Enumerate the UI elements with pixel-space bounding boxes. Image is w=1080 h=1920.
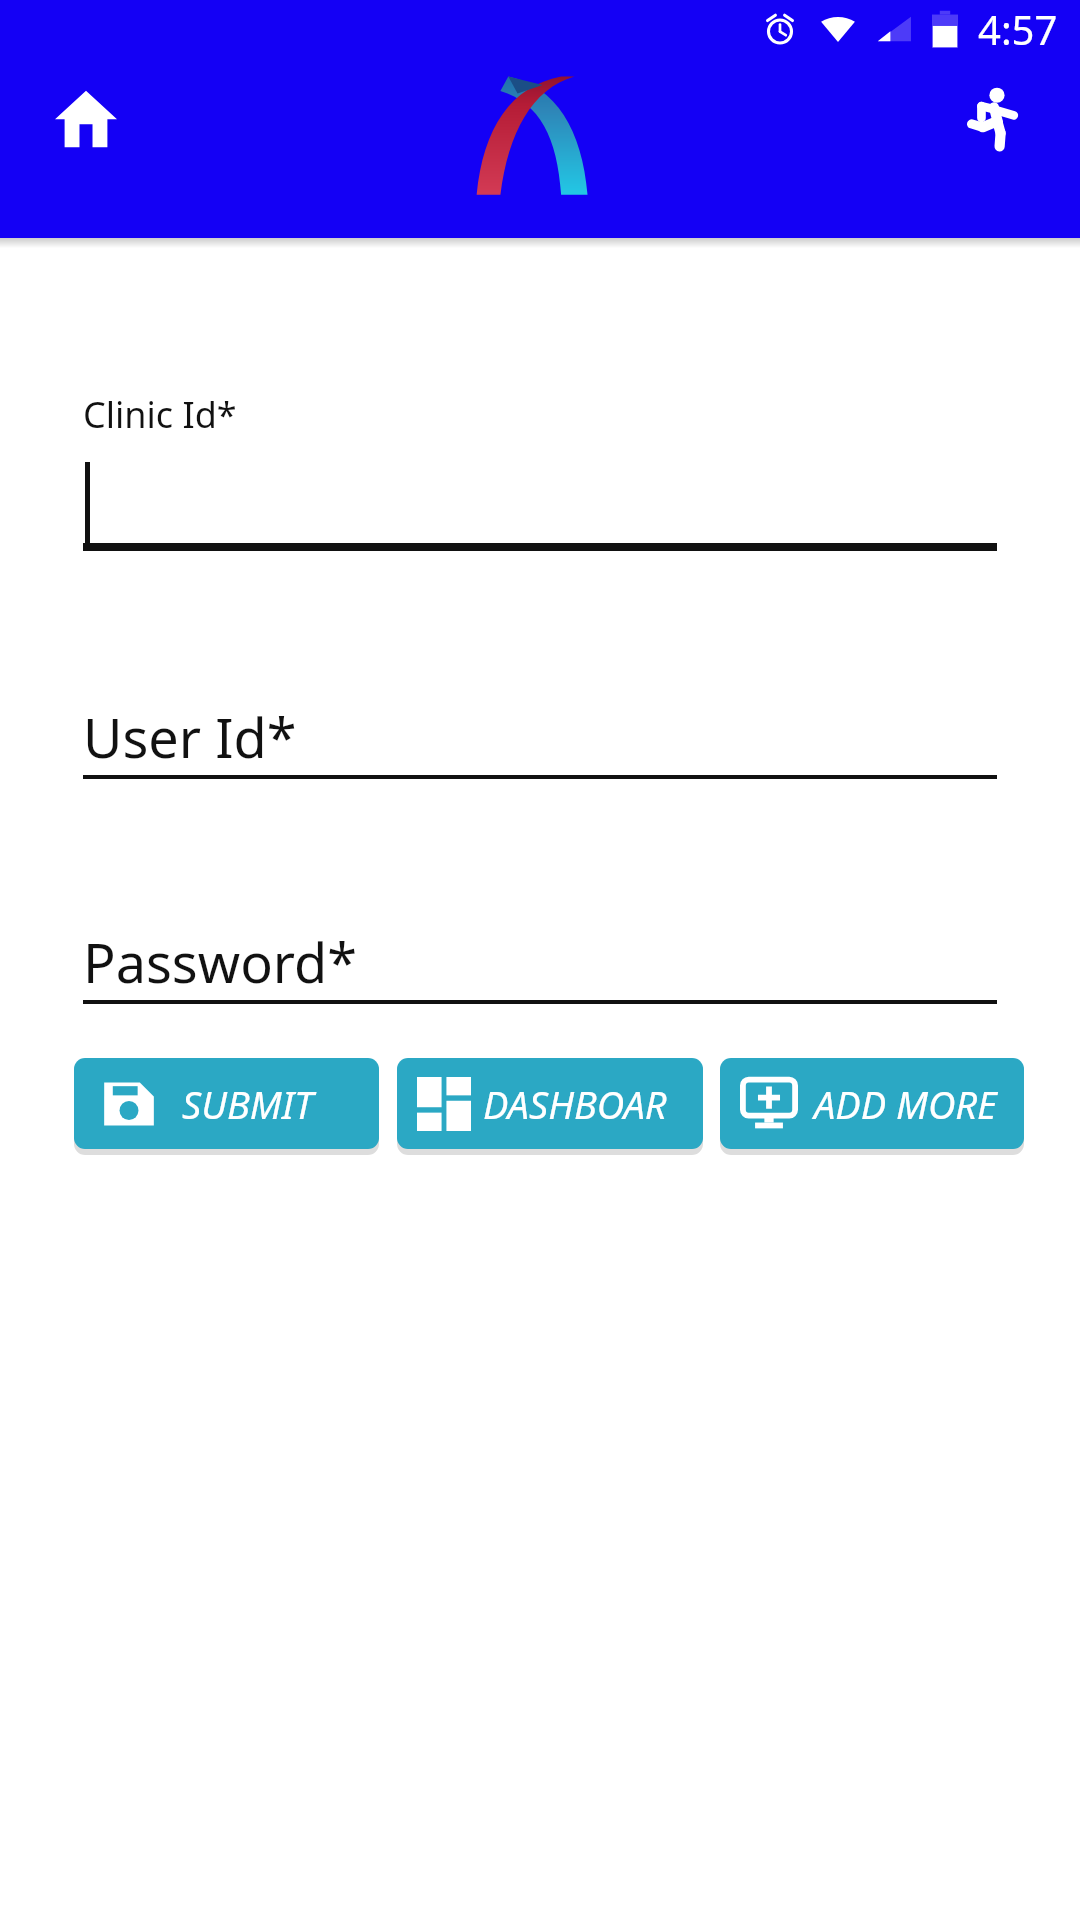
- button[interactable]: ADD MORE: [720, 1058, 1024, 1149]
- button[interactable]: User Id*: [83, 700, 997, 790]
- staticText: ADD MORE: [814, 1078, 997, 1130]
- button[interactable]: SUBMIT: [74, 1058, 379, 1149]
- staticText: Clinic Id*: [83, 390, 237, 439]
- staticText: SUBMIT: [182, 1078, 314, 1130]
- staticText: Password*: [83, 925, 357, 999]
- staticText: User Id*: [83, 700, 297, 774]
- staticText: DASHBOARD: [483, 1078, 691, 1130]
- button[interactable]: Logout: [948, 72, 1040, 164]
- button[interactable]: Home: [40, 72, 132, 164]
- button[interactable]: Password*: [83, 925, 997, 1015]
- button[interactable]: DASHBOARD: [397, 1058, 703, 1149]
- staticText: 4:57: [978, 2, 1058, 56]
- button[interactable]: Clinic Id*: [83, 390, 997, 565]
